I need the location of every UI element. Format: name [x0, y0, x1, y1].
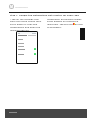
staticText: M — [10, 5, 14, 9]
button[interactable] — [5, 109, 87, 118]
staticText: • Tap on the Settings icon from the home… — [10, 17, 44, 32]
button[interactable]: Logo — [9, 4, 14, 9]
staticText: makeuseof — [15, 5, 28, 8]
button[interactable]: Phone screenshot — [17, 32, 37, 63]
staticText: Step 4 Enable the Notification Dots swit… — [10, 13, 87, 16]
staticText: notification dot feature shows small bad… — [47, 17, 84, 29]
